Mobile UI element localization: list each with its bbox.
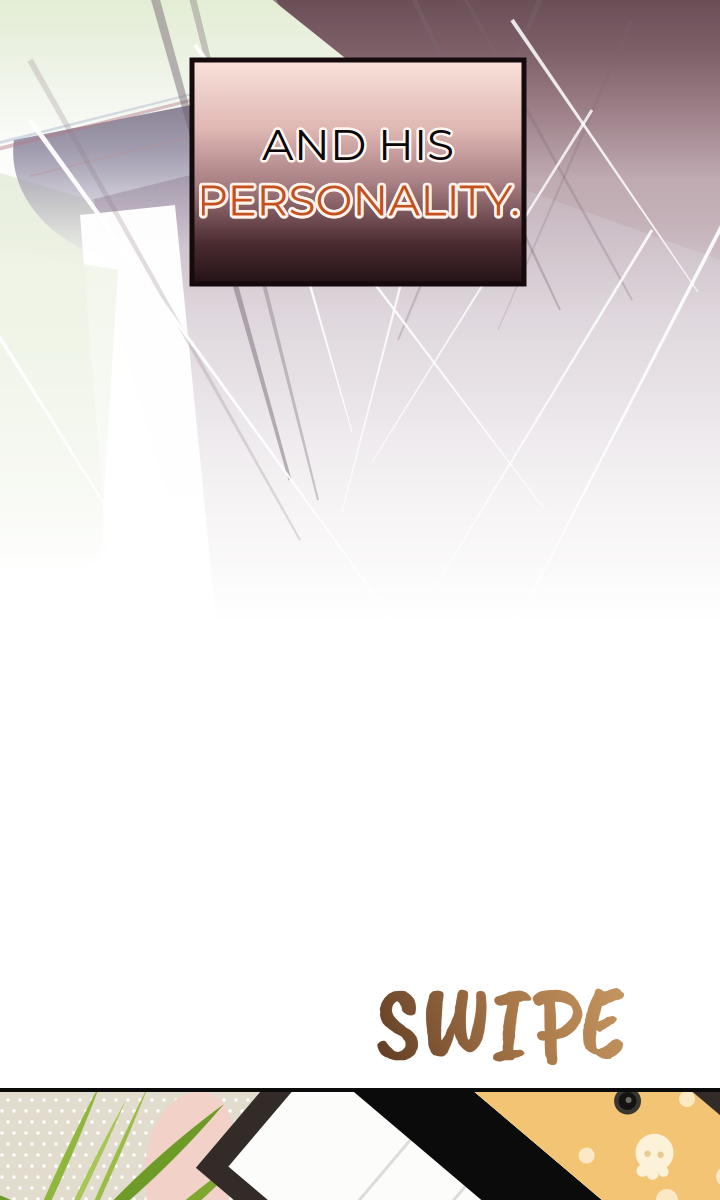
staticText: PERSONALITY. xyxy=(198,171,521,225)
staticText: PERSONALITY. xyxy=(199,173,522,227)
staticText: AND HIS xyxy=(260,117,452,171)
staticText: SKILLS CLASSES GL xyxy=(397,1039,720,1075)
staticText: PERSONALITY. xyxy=(196,170,519,224)
staticText: AND HIS xyxy=(264,119,456,173)
staticText: PERSONALITY. xyxy=(195,176,518,229)
staticText: AND HIS xyxy=(264,116,456,170)
staticText: AND HIS xyxy=(264,116,456,169)
staticText: AND HIS xyxy=(260,116,452,169)
staticText: AND HIS xyxy=(260,118,452,172)
staticText: AND HIS xyxy=(264,118,456,172)
staticText: PERSONALITY. xyxy=(196,173,519,227)
staticText: AND HIS xyxy=(261,120,453,173)
staticText: PERSONALITY. xyxy=(194,175,517,229)
staticText: PERSONALITY. xyxy=(194,173,517,227)
staticText: PERSONALITY. xyxy=(198,176,521,229)
staticText: AND HIS xyxy=(263,120,455,173)
staticText: AND HIS xyxy=(262,120,454,173)
staticText: PERSONALITY. xyxy=(198,170,521,224)
staticText: PERSONALITY. xyxy=(194,174,517,228)
staticText: AND HIS xyxy=(260,119,452,173)
staticText: AND HIS xyxy=(262,117,454,171)
staticText: PERSONALITY. xyxy=(194,172,517,225)
staticText: PERSONALITY. xyxy=(199,174,522,228)
staticText: AND HIS xyxy=(262,115,454,169)
staticText: PERSONALITY. xyxy=(196,176,519,229)
staticText: PERSONALITY. xyxy=(195,170,518,224)
staticText: AND HIS xyxy=(263,115,455,169)
staticText: AND HIS xyxy=(261,115,453,169)
staticText: PERSONALITY. xyxy=(194,171,517,225)
staticText: PERSONALITY. xyxy=(198,175,521,229)
staticText: AND HIS xyxy=(264,117,456,171)
staticText: PERSONALITY. xyxy=(199,172,522,225)
staticText: AND HIS xyxy=(260,116,452,170)
